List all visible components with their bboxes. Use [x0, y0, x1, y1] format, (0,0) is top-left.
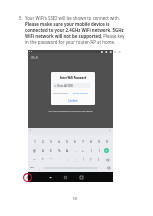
button[interactable]: Hide keyboard — [46, 173, 54, 181]
staticText: Show password — [53, 92, 69, 95]
button[interactable]: ' — [55, 156, 63, 163]
button[interactable] — [103, 147, 111, 154]
staticText: =\< — [33, 158, 37, 161]
button[interactable]: Chen-AX1800 — [54, 83, 89, 88]
staticText: Your WiFi's SSID will be shown to connec… — [25, 15, 125, 45]
staticText: ? — [90, 158, 92, 162]
staticText: 8 — [90, 140, 92, 144]
button[interactable]: 5 — [63, 138, 71, 145]
other: Step 4 callout — [23, 173, 32, 182]
staticText: Wi-Fi — [31, 56, 39, 60]
button[interactable]: Confirm — [51, 99, 95, 103]
button[interactable]: ) — [95, 147, 103, 154]
button[interactable]: 8 — [87, 138, 95, 145]
button[interactable]: . — [99, 164, 104, 171]
staticText: 4 — [26, 175, 29, 181]
button[interactable]: ABC — [28, 164, 37, 171]
button[interactable]: $ — [47, 147, 55, 154]
button[interactable]: # — [39, 147, 47, 154]
staticText: + — [82, 149, 84, 153]
staticText: @ — [33, 149, 36, 153]
button[interactable]: =\< — [30, 156, 39, 163]
button[interactable]: " — [47, 156, 55, 163]
staticText: ; — [75, 158, 76, 162]
button[interactable]: 7 — [79, 138, 87, 145]
staticText: ABC — [30, 166, 35, 169]
staticText: 9 — [98, 140, 100, 144]
staticText: Confirm — [68, 99, 79, 103]
staticText: 1 — [34, 140, 36, 144]
staticText: & — [66, 149, 69, 153]
button[interactable]: 6 — [71, 138, 79, 145]
button[interactable]: 0 — [103, 138, 111, 145]
staticText: 7 — [82, 140, 84, 144]
button[interactable]: 1 — [30, 138, 39, 145]
button[interactable]: / — [95, 156, 103, 163]
staticText: Use your password to connect this device — [28, 110, 113, 113]
button[interactable]: @ — [30, 147, 39, 154]
button[interactable]: Enter — [104, 148, 109, 153]
staticText: 18 — [72, 196, 77, 202]
staticText: Enter WiFi Password — [60, 76, 87, 79]
staticText: 5. — [19, 15, 23, 21]
staticText: : — [67, 158, 68, 162]
staticText: * — [42, 158, 44, 162]
button[interactable]: * — [39, 156, 47, 163]
button[interactable]: ; — [71, 156, 79, 163]
button[interactable]: Forget network — [73, 92, 89, 95]
staticText: ( — [91, 149, 92, 153]
button[interactable]: , — [37, 164, 42, 171]
staticText: ' — [59, 158, 60, 162]
button[interactable]: + — [79, 147, 87, 154]
staticText: 4 — [58, 140, 60, 144]
button[interactable]: ( — [87, 147, 95, 154]
staticText: / — [98, 158, 100, 162]
staticText: " — [50, 158, 52, 162]
staticText: # — [42, 149, 44, 153]
staticText: 2 — [42, 140, 44, 144]
staticText: - — [75, 149, 76, 153]
button[interactable]: 4 — [55, 138, 63, 145]
staticText: , — [39, 166, 40, 170]
staticText: 5 — [66, 140, 68, 144]
staticText: $ — [50, 149, 52, 153]
button[interactable]: Home — [61, 173, 69, 181]
button[interactable]: & — [63, 147, 71, 154]
button[interactable]: - — [71, 147, 79, 154]
button[interactable]: ! — [79, 156, 87, 163]
button[interactable]: 3 — [47, 138, 55, 145]
staticText: 0 — [106, 140, 108, 144]
button[interactable]: Backspace — [103, 156, 111, 163]
button[interactable]: % — [55, 147, 63, 154]
staticText: % — [58, 149, 61, 153]
staticText: ! — [83, 158, 84, 162]
button[interactable]: Return — [104, 164, 113, 171]
staticText: 6 — [74, 140, 76, 144]
button[interactable]: Recent apps — [77, 173, 85, 181]
button[interactable]: 2 — [39, 138, 47, 145]
button[interactable]: ? — [87, 156, 95, 163]
button[interactable]: 9 — [95, 138, 103, 145]
button[interactable]: : — [63, 156, 71, 163]
staticText: . — [101, 166, 102, 170]
staticText: Chen-AX1800 — [57, 84, 73, 87]
staticText: ) — [99, 149, 100, 153]
staticText: 3 — [50, 140, 52, 144]
